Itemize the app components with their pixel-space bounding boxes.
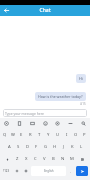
staticText: R	[29, 132, 32, 138]
button[interactable]: Shift	[2, 154, 12, 164]
staticText: P	[83, 132, 86, 138]
staticText: F	[35, 144, 38, 150]
button[interactable]: M	[67, 153, 76, 165]
button[interactable]: How is the weather today?	[35, 92, 86, 101]
button[interactable]: Emoji	[13, 166, 20, 176]
button[interactable]: Q	[1, 129, 9, 141]
button[interactable]: Keyboard settings	[22, 166, 29, 176]
staticText: English	[44, 169, 54, 173]
staticText: L	[80, 144, 83, 150]
button[interactable]: G	[41, 141, 50, 153]
button[interactable]: Sticker	[42, 120, 49, 127]
staticText: Type your message here	[5, 111, 44, 116]
button[interactable]: Search	[80, 120, 87, 127]
staticText: Z	[16, 156, 19, 162]
button[interactable]: U	[53, 129, 62, 141]
button[interactable]: N	[58, 153, 67, 165]
staticText: N	[61, 156, 65, 162]
button[interactable]: X	[22, 153, 31, 165]
button[interactable]: Back	[2, 6, 11, 15]
button[interactable]: English	[31, 166, 66, 176]
staticText: E	[20, 132, 23, 138]
staticText: T	[38, 132, 41, 138]
button[interactable]: Voice input	[3, 120, 10, 127]
staticText: X	[25, 156, 28, 162]
button[interactable]: L	[77, 141, 86, 153]
button[interactable]: C	[31, 153, 40, 165]
button[interactable]: O	[71, 129, 80, 141]
staticText: M	[70, 156, 74, 162]
staticText: 4:15	[80, 102, 86, 106]
button[interactable]: P	[80, 129, 89, 141]
staticText: Q	[3, 132, 7, 138]
button[interactable]: B	[49, 153, 58, 165]
button[interactable]: Hi	[76, 74, 86, 83]
staticText: D	[26, 144, 30, 150]
staticText: J	[63, 144, 65, 150]
button[interactable]: J	[59, 141, 68, 153]
staticText: I	[66, 132, 68, 138]
button[interactable]: S	[14, 141, 23, 153]
button[interactable]: E	[17, 129, 26, 141]
button[interactable]: ?123	[2, 166, 11, 176]
staticText: V	[43, 156, 46, 162]
button[interactable]: A	[4, 141, 14, 153]
button[interactable]: F	[32, 141, 41, 153]
staticText: W	[11, 132, 15, 138]
button[interactable]: Type your message here	[3, 109, 87, 117]
staticText: Hi	[79, 76, 83, 81]
button[interactable]: V	[40, 153, 49, 165]
button[interactable]: More	[67, 120, 74, 127]
staticText: How is the weather today?	[38, 94, 83, 99]
staticText: H	[53, 144, 57, 150]
staticText: K	[71, 144, 74, 150]
staticText: .	[70, 169, 72, 174]
button[interactable]: H	[50, 141, 59, 153]
button[interactable]: I	[62, 129, 71, 141]
staticText: S	[17, 144, 20, 150]
button[interactable]: K	[68, 141, 77, 153]
button[interactable]: R	[26, 129, 35, 141]
staticText: C	[34, 156, 37, 162]
button[interactable]: Settings	[54, 120, 61, 127]
staticText: G	[44, 144, 48, 150]
staticText: Y	[47, 132, 50, 138]
staticText: ?123	[3, 169, 10, 173]
button[interactable]: Send	[76, 166, 88, 176]
button[interactable]: W	[9, 129, 17, 141]
staticText: U	[56, 132, 60, 138]
staticText: O	[74, 132, 78, 138]
button[interactable]: D	[23, 141, 32, 153]
button[interactable]: GIF	[29, 120, 36, 127]
button[interactable]: T	[35, 129, 44, 141]
button[interactable]: Y	[44, 129, 53, 141]
button[interactable]: Backspace	[77, 154, 88, 164]
button[interactable]: Z	[13, 153, 22, 165]
button[interactable]: Clipboard	[16, 120, 23, 127]
staticText: Chat	[39, 7, 51, 14]
staticText: B	[52, 156, 55, 162]
staticText: A	[8, 144, 11, 150]
